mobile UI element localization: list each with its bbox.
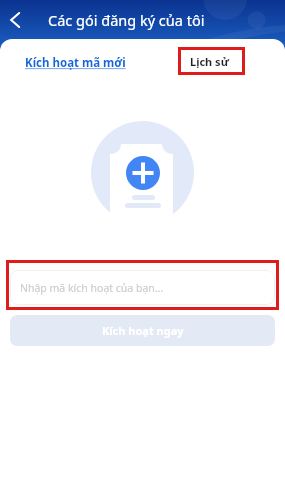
button[interactable]: Back (2, 7, 28, 33)
button[interactable]: Kích hoạt ngay (10, 315, 275, 346)
button[interactable]: Lịch sử (190, 54, 229, 69)
button[interactable]: Kích hoạt mã mới (25, 55, 126, 71)
staticText: Kích hoạt ngay (102, 323, 184, 338)
staticText: Nhập mã kích hoạt của bạn... (20, 281, 164, 295)
button[interactable]: Nhập mã kích hoạt của bạn... (10, 270, 275, 305)
staticText: Lịch sử (190, 54, 229, 69)
staticText: Các gói đăng ký của tôi (48, 10, 205, 30)
staticText: Kích hoạt mã mới (25, 55, 126, 71)
